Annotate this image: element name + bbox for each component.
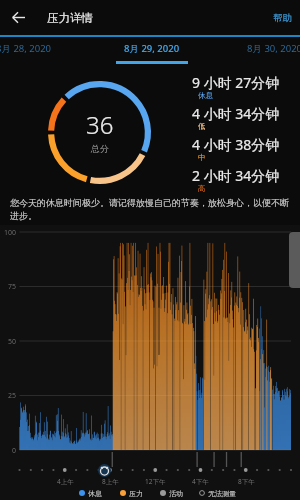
staticText: 4下午 [192, 477, 209, 486]
staticText: 9 小时 27分钟 [192, 73, 280, 92]
button[interactable]: 活动 [160, 487, 183, 499]
button[interactable]: 无法测量 [199, 487, 236, 499]
staticText: 帮助 [273, 12, 292, 24]
button[interactable]: 8月 30, 2020 [239, 37, 300, 65]
staticText: 低 [198, 122, 206, 131]
staticText: 8月 28, 2020 [0, 42, 52, 55]
staticText: 休息 [88, 489, 102, 498]
staticText: 12下午 [145, 477, 166, 486]
staticText: 8月 29, 2020 [124, 42, 180, 55]
staticText: 4 小时 38分钟 [192, 135, 280, 154]
button[interactable]: Alarm [98, 464, 111, 477]
staticText: 压力 [129, 489, 143, 498]
staticText: 高 [198, 184, 206, 193]
staticText: 4上午 [57, 477, 74, 486]
button[interactable]: 8月 28, 2020 [0, 37, 60, 65]
staticText: 总分 [91, 143, 109, 154]
button[interactable]: 休息 [79, 487, 102, 499]
staticText: 8下午 [238, 477, 255, 486]
staticText: 休息 [198, 91, 213, 100]
staticText: 4 小时 34分钟 [192, 104, 280, 123]
staticText: 中 [198, 153, 206, 162]
button[interactable]: 压力 [120, 487, 143, 499]
button[interactable]: Back [6, 5, 31, 30]
staticText: 您今天的休息时间极少。请记得放慢自己的节奏，放松身心，以便不断进步。 [10, 197, 291, 222]
staticText: 无法测量 [208, 489, 236, 498]
staticText: 25 [8, 391, 17, 401]
staticText: 8上午 [102, 477, 119, 486]
button[interactable]: 8月 29, 2020 [116, 37, 188, 65]
staticText: 100 [4, 228, 17, 238]
staticText: 活动 [169, 489, 183, 498]
button[interactable]: 帮助 [273, 12, 292, 24]
staticText: 36 [86, 108, 114, 141]
staticText: 8月 30, 2020 [247, 42, 300, 55]
staticText: 0 [12, 446, 17, 456]
staticText: 75 [8, 282, 17, 292]
staticText: 50 [8, 337, 17, 347]
staticText: 压力详情 [47, 11, 93, 25]
staticText: 2 小时 34分钟 [192, 166, 280, 185]
